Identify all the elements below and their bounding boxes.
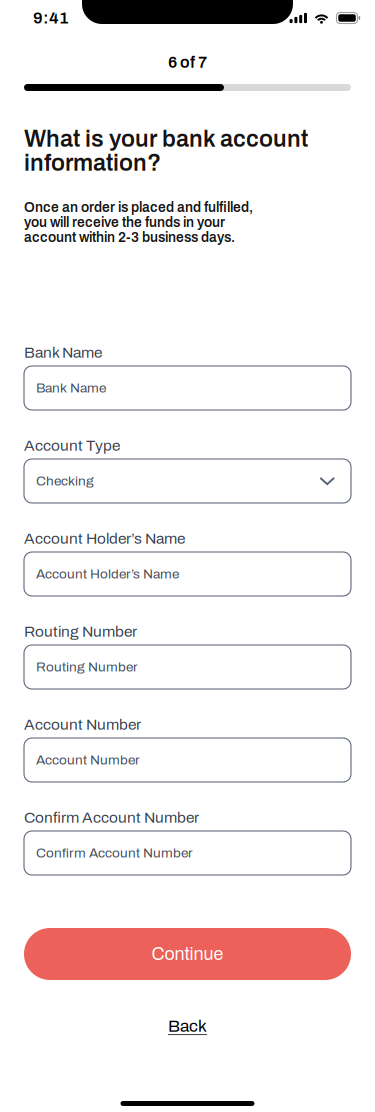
- button[interactable]: Account Number: [24, 738, 351, 782]
- button[interactable]: Checking: [24, 459, 351, 503]
- button[interactable]: Confirm Account Number: [24, 831, 351, 875]
- staticText: you will receive the funds in your: [24, 215, 225, 230]
- button[interactable]: Back: [154, 1008, 221, 1044]
- staticText: 9:41: [33, 9, 69, 27]
- staticText: Account Number: [24, 716, 141, 733]
- button[interactable]: Routing Number: [24, 645, 351, 689]
- staticText: Routing Number: [36, 660, 138, 674]
- staticText: Routing Number: [24, 623, 137, 640]
- button[interactable]: Continue: [24, 928, 351, 980]
- staticText: Account Number: [36, 753, 140, 767]
- staticText: Confirm Account Number: [36, 846, 193, 860]
- staticText: What is your bank account: [24, 126, 308, 152]
- button[interactable]: Bank Name: [24, 366, 351, 410]
- staticText: Account Holder’s Name: [24, 530, 185, 547]
- staticText: account within 2-3 business days.: [24, 230, 235, 245]
- staticText: Confirm Account Number: [24, 809, 199, 826]
- staticText: Account Type: [24, 437, 120, 454]
- staticText: Checking: [36, 474, 94, 488]
- staticText: Continue: [151, 944, 223, 964]
- staticText: Back: [168, 1017, 207, 1035]
- staticText: Bank Name: [24, 344, 102, 361]
- staticText: information?: [24, 150, 161, 176]
- staticText: Account Holder’s Name: [36, 567, 179, 581]
- button[interactable]: Account Holder’s Name: [24, 552, 351, 596]
- staticText: 6 of 7: [168, 54, 207, 71]
- staticText: Once an order is placed and fulfilled,: [24, 200, 253, 215]
- staticText: Bank Name: [36, 381, 106, 395]
